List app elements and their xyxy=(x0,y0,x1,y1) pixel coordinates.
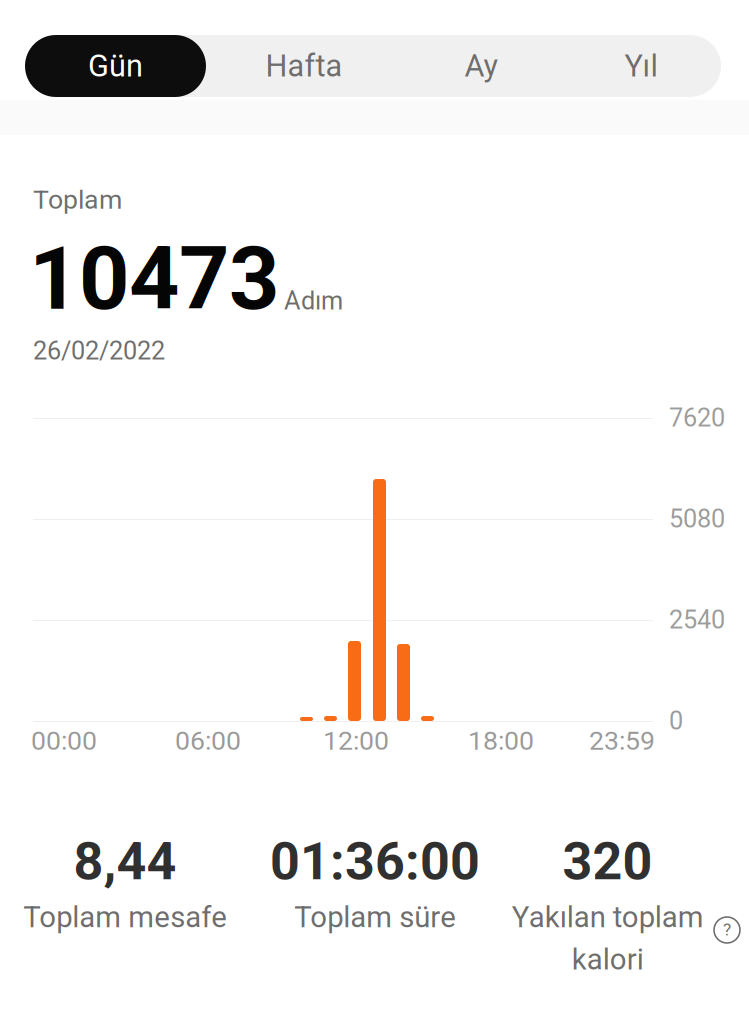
staticText: Hafta xyxy=(265,48,342,84)
staticText: 18:00 xyxy=(468,725,534,756)
button[interactable]: Yakılan toplam kalori hakkında bilgi xyxy=(705,908,749,952)
button[interactable]: Yıl xyxy=(561,35,721,97)
staticText: Toplam xyxy=(33,184,122,215)
staticText: ? xyxy=(723,919,731,940)
button[interactable]: Gün xyxy=(25,35,206,97)
button[interactable]: Hafta xyxy=(206,35,402,97)
staticText: 5080 xyxy=(669,504,725,534)
staticText: Gün xyxy=(88,48,143,84)
staticText: Ay xyxy=(464,48,498,84)
button[interactable]: Ay xyxy=(402,35,561,97)
staticText: 06:00 xyxy=(175,725,241,756)
staticText: Yıl xyxy=(624,48,657,84)
staticText: 8,44 xyxy=(73,831,176,892)
staticText: Adım xyxy=(284,286,343,316)
staticText: 01:36:00 xyxy=(270,831,480,892)
staticText: 23:59 xyxy=(589,725,655,756)
staticText: 10473 xyxy=(29,227,279,330)
staticText: 00:00 xyxy=(31,725,97,756)
staticText: 320 xyxy=(562,831,652,892)
staticText: Yakılan toplam kalori xyxy=(511,900,703,977)
staticText: 7620 xyxy=(669,403,725,433)
staticText: Toplam süre xyxy=(294,900,456,934)
staticText: 0 xyxy=(669,706,683,736)
staticText: 2540 xyxy=(669,605,725,635)
staticText: Toplam mesafe xyxy=(23,900,227,934)
staticText: 12:00 xyxy=(323,725,389,756)
staticText: 26/02/2022 xyxy=(33,336,165,366)
